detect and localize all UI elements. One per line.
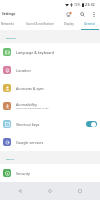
button[interactable]: Sound & notification — [18, 20, 62, 30]
button[interactable]: Home — [40, 182, 60, 200]
staticText: Settings — [2, 12, 16, 16]
staticText: Shortcut keys — [16, 122, 40, 127]
staticText: Networks — [1, 22, 15, 26]
button[interactable]: Smart doctor — [61, 8, 76, 20]
button[interactable]: Google services — [0, 133, 100, 151]
staticText: Sound & notification — [26, 22, 54, 26]
button[interactable]: Back — [10, 182, 30, 200]
staticText: Accessibility — [16, 102, 37, 107]
button[interactable]: Shortcut keys — [0, 115, 100, 133]
staticText: 74% — [74, 3, 81, 7]
button[interactable]: More options — [89, 8, 99, 20]
staticText: Display — [64, 22, 74, 26]
staticText: Location — [16, 68, 31, 73]
staticText: Accounts & sync — [16, 86, 45, 91]
staticText: Language & keyboard — [16, 50, 54, 55]
staticText: Security — [16, 171, 30, 176]
button[interactable]: Language & keyboard — [0, 43, 100, 61]
button[interactable]: Accessibility — [0, 97, 100, 115]
staticText: PERSONAL — [6, 37, 17, 40]
button[interactable]: Location — [0, 61, 100, 79]
button[interactable]: Display — [62, 20, 76, 30]
staticText: Google services — [16, 140, 44, 145]
button[interactable]: Search — [76, 8, 89, 20]
button[interactable]: Networks — [0, 20, 16, 30]
button[interactable]: Security — [0, 164, 100, 182]
button[interactable]: General — [79, 20, 100, 30]
staticText: Make your phone easier to use — [16, 107, 49, 110]
button[interactable]: Shortcut keys on — [86, 121, 97, 127]
button[interactable]: Accounts & sync — [0, 79, 100, 97]
staticText: 23:32 — [85, 2, 95, 7]
button[interactable]: Recent apps — [70, 182, 90, 200]
staticText: General — [84, 22, 95, 26]
staticText: PRIVACY — [6, 158, 15, 161]
